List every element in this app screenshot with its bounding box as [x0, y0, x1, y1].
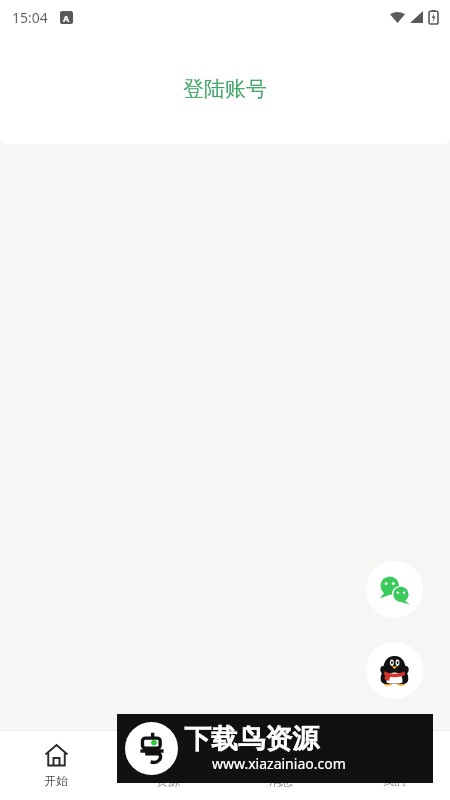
staticText: A — [63, 12, 70, 24]
staticText: 下载鸟资源 — [184, 722, 319, 756]
staticText: 15:04 — [12, 8, 48, 27]
staticText: 登陆账号 — [183, 76, 267, 102]
button[interactable]: 资源 — [112, 731, 224, 800]
button[interactable]: QQ login — [366, 642, 423, 699]
staticText: 开始 — [44, 773, 68, 788]
button[interactable]: WeChat login — [366, 561, 423, 618]
button[interactable]: 开始 — [0, 731, 112, 800]
button[interactable]: 我的 — [337, 731, 450, 800]
staticText: 消息 — [269, 773, 293, 788]
staticText: 资源 — [156, 773, 180, 788]
staticText: www.xiazainiao.com — [212, 754, 346, 773]
button[interactable]: 消息 — [224, 731, 337, 800]
staticText: 我的 — [382, 773, 406, 788]
